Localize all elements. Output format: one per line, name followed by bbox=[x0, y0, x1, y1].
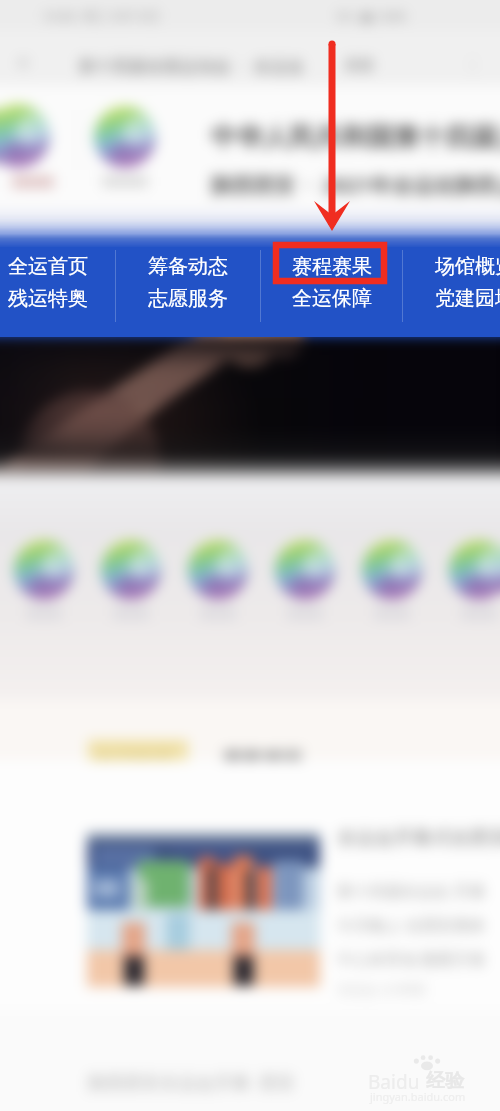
button[interactable]: 全运首页 bbox=[8, 254, 88, 311]
staticText: 残运特奥 bbox=[8, 286, 88, 311]
staticText: 中华人民共和国第十四届运动 bbox=[211, 121, 500, 154]
staticText: 全运首页 bbox=[8, 254, 88, 279]
button[interactable]: 赛程赛果 bbox=[292, 254, 372, 311]
staticText: 今天晚上 在西安奥体 bbox=[337, 914, 486, 936]
staticText: 全运保障 bbox=[292, 286, 372, 311]
staticText: 全运会开幕式在西安举行 bbox=[337, 826, 500, 850]
button[interactable]: 场馆概览 bbox=[435, 254, 500, 311]
staticText: jingyan.baidu.com bbox=[370, 1089, 466, 1104]
button[interactable]: 筹备动态 bbox=[148, 254, 228, 311]
staticText: 党建园地 bbox=[435, 286, 500, 311]
staticText: 赛事播报 bbox=[222, 748, 302, 773]
staticText: 陕西西安全运会开幕 西安 bbox=[88, 1070, 296, 1095]
staticText: du bbox=[396, 1069, 420, 1095]
staticText: 场馆概览 bbox=[435, 254, 500, 279]
staticText: 中心体育场 隆重开幕 bbox=[337, 948, 486, 970]
staticText: 筹备动态 bbox=[148, 254, 228, 279]
staticText: 经验 bbox=[426, 1069, 464, 1093]
staticText: 赛程赛果 bbox=[292, 254, 372, 279]
staticText: 志愿服务 bbox=[148, 286, 228, 311]
other: Pointer arrow bbox=[0, 0, 500, 1111]
staticText: 5G ▮▮ 84% bbox=[336, 7, 407, 25]
staticText: 第十四届全运会 开幕 bbox=[337, 880, 486, 902]
staticText: 陕西西安 · 2021年全运在陕西办 bbox=[211, 171, 500, 200]
staticText: 第十四届全国运动会 · 全运会 bbox=[78, 54, 305, 77]
staticText: Bai bbox=[368, 1069, 396, 1095]
staticText: 全运快讯 bbox=[94, 748, 174, 773]
staticText: 刷新 bbox=[345, 56, 375, 75]
